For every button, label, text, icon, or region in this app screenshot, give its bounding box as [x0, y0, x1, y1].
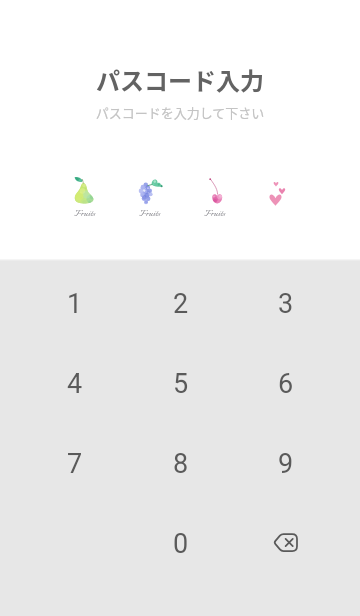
button[interactable]: Pear [52, 172, 117, 224]
staticText: 0 [173, 528, 189, 560]
staticText: 2 [173, 288, 189, 320]
button[interactable]: Delete [233, 504, 338, 584]
button[interactable]: 2 [128, 264, 233, 344]
staticText: 8 [173, 448, 189, 480]
staticText: 9 [278, 448, 294, 480]
button[interactable]: 0 [128, 504, 233, 584]
staticText: 7 [67, 448, 83, 480]
button[interactable]: Grapes [117, 172, 182, 224]
staticText: Fruits [117, 207, 182, 221]
staticText: 6 [278, 368, 294, 400]
button[interactable]: 8 [128, 424, 233, 504]
staticText: 4 [67, 368, 83, 400]
button[interactable]: 6 [233, 344, 338, 424]
staticText: パスコードを入力して下さい [0, 103, 360, 122]
button[interactable]: 4 [22, 344, 128, 424]
button[interactable]: Cherry [182, 172, 247, 224]
button[interactable]: 1 [22, 264, 128, 344]
staticText: 1 [67, 288, 83, 320]
button[interactable]: 9 [233, 424, 338, 504]
button[interactable]: 3 [233, 264, 338, 344]
button[interactable]: Hearts [247, 172, 312, 224]
staticText: 5 [173, 368, 189, 400]
staticText: Fruits [182, 207, 247, 221]
button[interactable]: 5 [128, 344, 233, 424]
button[interactable]: 7 [22, 424, 128, 504]
staticText: Fruits [52, 207, 117, 221]
staticText: パスコード入力 [0, 62, 360, 97]
staticText: 3 [278, 288, 294, 320]
